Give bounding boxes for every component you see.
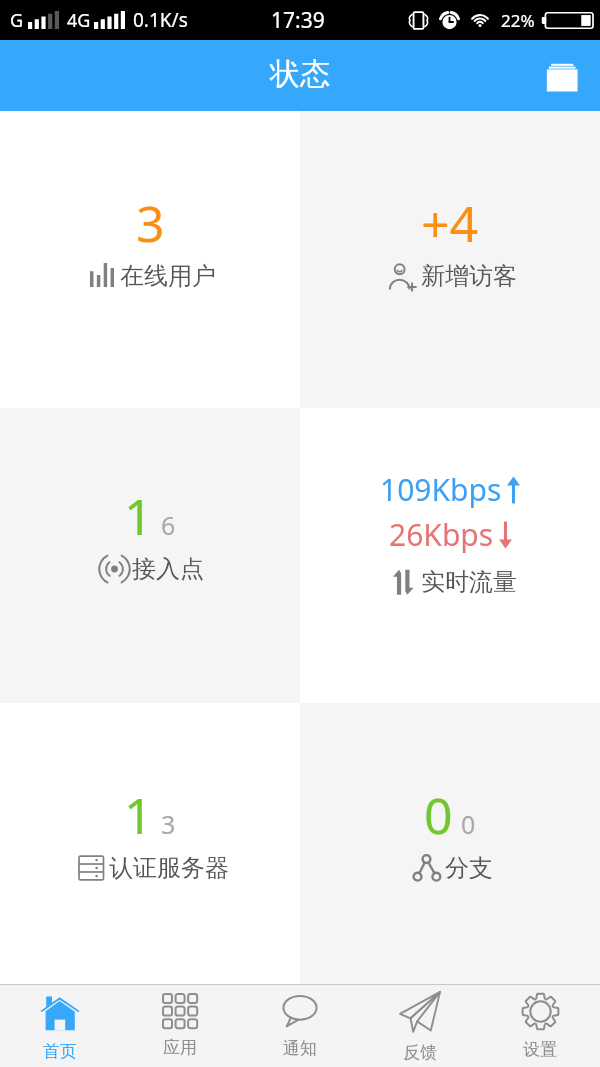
staticText: 接入点	[132, 554, 204, 584]
button[interactable]: 109Kbps	[300, 408, 600, 703]
staticText: 分支	[445, 853, 493, 883]
staticText: 0	[461, 807, 476, 841]
button[interactable]: 反馈	[360, 985, 480, 1067]
staticText: 1	[124, 482, 153, 550]
staticText: 应用	[163, 1037, 197, 1058]
staticText: 新增访客	[421, 261, 517, 291]
staticText: 实时流量	[421, 567, 517, 597]
staticText: 状态	[270, 55, 330, 93]
staticText: 17:39	[271, 6, 325, 35]
staticText: 3	[161, 807, 176, 841]
staticText: 1	[124, 781, 153, 849]
button[interactable]: 0	[300, 703, 600, 984]
button[interactable]: +4	[300, 111, 600, 408]
staticText: 反馈	[403, 1042, 437, 1063]
button[interactable]: Cards	[536, 50, 588, 102]
button[interactable]: 通知	[240, 985, 360, 1067]
staticText: 4G	[67, 8, 91, 33]
button[interactable]: 应用	[120, 985, 240, 1067]
button[interactable]: 1	[0, 408, 300, 703]
staticText: 认证服务器	[109, 853, 229, 883]
staticText: 0.1K/s	[133, 7, 188, 33]
button[interactable]: 设置	[480, 985, 600, 1067]
staticText: 6	[161, 508, 176, 542]
staticText: 通知	[283, 1038, 317, 1059]
staticText: 设置	[523, 1039, 557, 1060]
staticText: 首页	[43, 1041, 77, 1062]
staticText: 26Kbps	[389, 514, 494, 555]
button[interactable]: 首页	[0, 985, 120, 1067]
staticText: 22%	[501, 9, 535, 32]
button[interactable]: 1	[0, 703, 300, 984]
staticText: +4	[421, 189, 479, 257]
staticText: 109Kbps	[380, 469, 502, 510]
staticText: 在线用户	[120, 261, 216, 291]
staticText: 0	[424, 781, 453, 849]
button[interactable]: 3	[0, 111, 300, 408]
staticText: G	[10, 8, 24, 33]
staticText: 3	[136, 189, 165, 257]
